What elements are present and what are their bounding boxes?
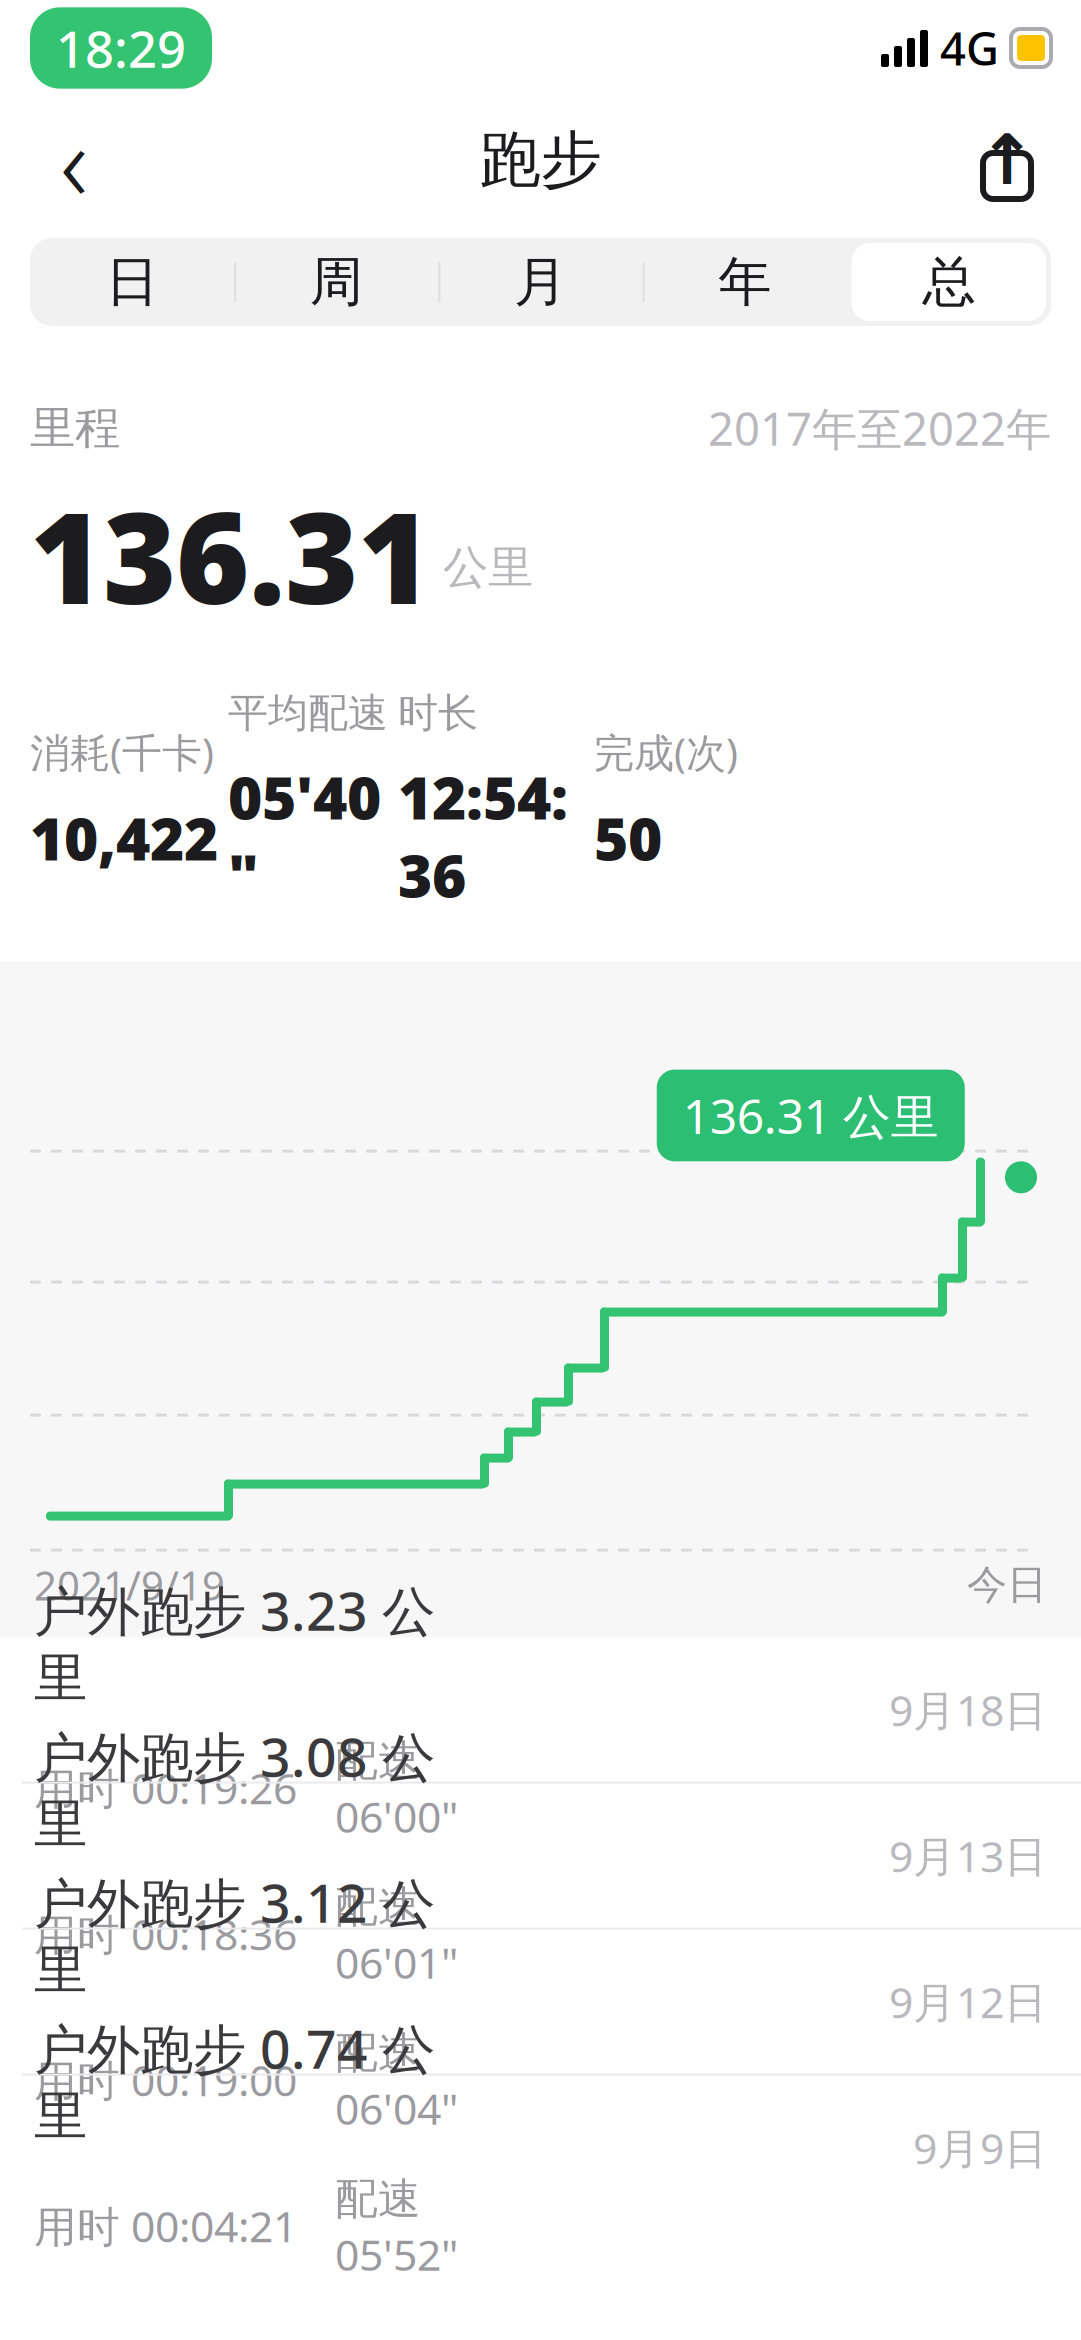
staticText: 配速 06'01"	[335, 1877, 458, 1990]
staticText: 公里	[443, 540, 533, 595]
staticText: 9月13日	[889, 1827, 1047, 1884]
staticText: 2021/9/19	[34, 1558, 225, 1612]
button[interactable]: 日	[30, 238, 234, 326]
staticText: 用时 00:19:26	[34, 1759, 297, 1816]
staticText: 05'40"	[228, 758, 381, 914]
button[interactable]: 年	[643, 238, 847, 326]
button[interactable]: 周	[234, 238, 438, 326]
staticText: 配速 05'52"	[335, 2169, 458, 2282]
staticText: 136.31	[30, 472, 431, 639]
button[interactable]: 户外跑步 3.23 公里	[0, 1638, 1081, 1784]
staticText: 周	[310, 249, 363, 315]
button[interactable]: 总	[847, 238, 1051, 326]
staticText: 2017年至2022年	[708, 398, 1051, 458]
staticText: 配速 06'00"	[335, 1731, 458, 1844]
staticText: 跑步	[479, 122, 601, 198]
staticText: 平均配速	[228, 689, 388, 738]
staticText: 时长	[398, 689, 478, 738]
staticText: 配速 06'04"	[335, 2023, 458, 2136]
staticText: 今日	[967, 1560, 1047, 1610]
staticText: 完成(次)	[594, 726, 738, 779]
staticText: 年	[718, 249, 771, 315]
staticText: 用时 00:19:00	[34, 2051, 297, 2108]
staticText: 用时 00:18:36	[34, 1905, 297, 1962]
button[interactable]: Share	[959, 112, 1055, 208]
staticText: 12:54:36	[398, 758, 568, 914]
staticText: 4G	[940, 18, 999, 78]
button[interactable]: 月	[438, 238, 643, 326]
staticText: 消耗(千卡)	[30, 726, 214, 779]
staticText: 日	[106, 249, 159, 315]
staticText: 用时 00:04:21	[34, 2197, 297, 2254]
staticText: 9月9日	[913, 2119, 1047, 2176]
staticText: ↑	[978, 121, 1036, 199]
button[interactable]: 户外跑步 0.74 公里	[0, 2076, 1081, 2222]
staticText: 户外跑步 3.08 公里	[34, 1721, 435, 1857]
button[interactable]: Back	[26, 112, 122, 208]
button[interactable]: 户外跑步 3.08 公里	[0, 1784, 1081, 1930]
staticText: 9月12日	[889, 1973, 1047, 2030]
staticText: 户外跑步 3.12 公里	[34, 1867, 435, 2003]
staticText: 户外跑步 0.74 公里	[34, 2013, 435, 2149]
staticText: 月	[514, 249, 567, 315]
staticText: 10,422	[30, 799, 218, 877]
staticText: 9月18日	[889, 1681, 1047, 1738]
staticText: 50	[594, 799, 662, 877]
staticText: 18:29	[56, 14, 186, 82]
staticText: 总	[922, 249, 975, 315]
staticText: 里程	[30, 400, 120, 456]
button[interactable]: 户外跑步 3.12 公里	[0, 1930, 1081, 2076]
staticText: 户外跑步 3.23 公里	[34, 1575, 435, 1711]
staticText: ‹	[60, 89, 88, 231]
staticText: 136.31 公里	[683, 1084, 939, 1147]
